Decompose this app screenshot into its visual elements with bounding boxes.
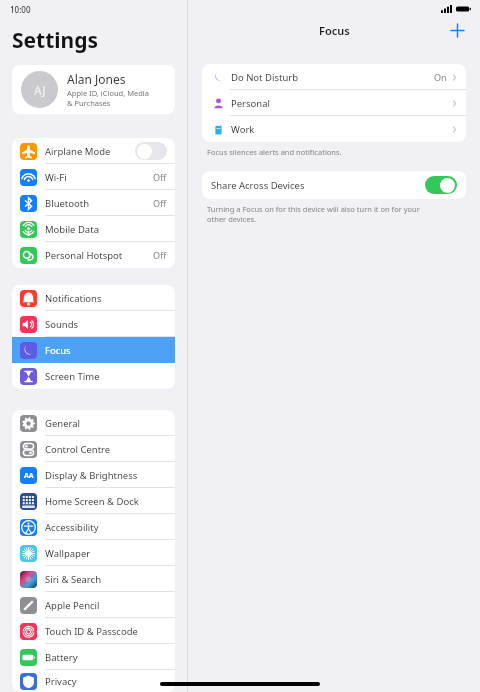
button[interactable]: Wallpaper [12, 540, 175, 566]
staticText: Focus silences alerts and notifications. [207, 147, 342, 157]
button[interactable]: Sounds [12, 311, 175, 337]
staticText: Wi-Fi [45, 171, 67, 184]
staticText: & Purchases [67, 98, 111, 108]
button[interactable]: Privacy [12, 670, 175, 692]
button[interactable]: Apple Pencil [12, 592, 175, 618]
button[interactable]: Screen Time [12, 363, 175, 389]
button[interactable]: Add Focus [448, 21, 466, 39]
staticText: Apple ID, iCloud, Media [67, 88, 149, 98]
staticText: Accessibility [45, 521, 99, 534]
button[interactable]: Focus [12, 337, 175, 363]
button[interactable]: Accessibility [12, 514, 175, 540]
staticText: Work [231, 123, 255, 136]
staticText: Battery [45, 651, 78, 664]
button[interactable]: Personal [202, 90, 466, 116]
staticText: General [45, 417, 81, 430]
staticText: Personal Hotspot [45, 249, 123, 262]
button[interactable]: AA [12, 462, 175, 488]
staticText: Screen Time [45, 370, 100, 383]
staticText: other devices. [207, 214, 257, 224]
staticText: AJ [34, 82, 46, 98]
button[interactable]: Siri & Search [12, 566, 175, 592]
staticText: Turning a Focus on for this device will … [207, 204, 420, 214]
staticText: Bluetooth [45, 197, 90, 210]
button[interactable]: Share Across Devices [202, 171, 466, 199]
staticText: Focus [319, 23, 350, 38]
button[interactable]: Toggle off [135, 142, 167, 160]
staticText: Privacy [45, 675, 77, 688]
staticText: Touch ID & Passcode [45, 625, 138, 638]
button[interactable]: Personal Hotspot [12, 242, 175, 268]
staticText: Notifications [45, 292, 102, 305]
staticText: On [434, 71, 447, 83]
button[interactable]: Control Centre [12, 436, 175, 462]
staticText: Share Across Devices [211, 179, 305, 192]
staticText: Home Screen & Dock [45, 495, 139, 508]
staticText: Focus [45, 344, 71, 357]
staticText: 10:00 [10, 4, 31, 15]
staticText: Mobile Data [45, 223, 99, 236]
staticText: Settings [12, 26, 99, 55]
staticText: Display & Brightness [45, 469, 138, 482]
button[interactable]: Work [202, 116, 466, 142]
button[interactable]: Battery [12, 644, 175, 670]
button[interactable]: Home Screen & Dock [12, 488, 175, 514]
button[interactable]: Mobile Data [12, 216, 175, 242]
button[interactable]: Notifications [12, 285, 175, 311]
staticText: Control Centre [45, 443, 111, 456]
staticText: Airplane Mode [45, 145, 111, 158]
button[interactable]: Toggle on [425, 176, 457, 194]
staticText: Siri & Search [45, 573, 102, 586]
button[interactable]: Bluetooth [12, 190, 175, 216]
staticText: Off [153, 197, 167, 209]
staticText: Apple Pencil [45, 599, 100, 612]
staticText: Wallpaper [45, 547, 91, 560]
button[interactable]: Airplane Mode [12, 138, 175, 164]
button[interactable]: Wi-Fi [12, 164, 175, 190]
staticText: Sounds [45, 318, 79, 331]
button[interactable]: General [12, 410, 175, 436]
staticText: Off [153, 249, 167, 261]
staticText: Do Not Disturb [231, 71, 299, 84]
staticText: AA [24, 471, 34, 481]
staticText: Off [153, 171, 167, 183]
button[interactable]: Touch ID & Passcode [12, 618, 175, 644]
staticText: Personal [231, 97, 270, 110]
button[interactable]: AJ [12, 65, 175, 114]
staticText: Alan Jones [67, 71, 126, 87]
button[interactable]: Do Not Disturb [202, 64, 466, 90]
